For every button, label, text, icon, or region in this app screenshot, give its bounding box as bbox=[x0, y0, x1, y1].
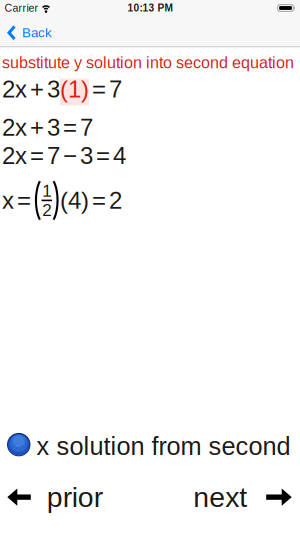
staticText: = bbox=[17, 187, 31, 214]
staticText: next bbox=[193, 481, 247, 513]
staticText: + bbox=[30, 76, 44, 102]
staticText: = bbox=[92, 76, 106, 102]
staticText: 7 bbox=[109, 76, 122, 102]
staticText: 2x bbox=[2, 76, 27, 102]
staticText: prior bbox=[47, 481, 103, 513]
staticText: 7 bbox=[80, 114, 93, 141]
button[interactable]: Back bbox=[0, 22, 52, 40]
staticText: 3 bbox=[47, 114, 60, 141]
staticText: 3 bbox=[80, 142, 93, 169]
staticText: 1 bbox=[42, 181, 51, 200]
staticText: 3 bbox=[47, 76, 60, 102]
staticText: x bbox=[2, 187, 14, 214]
staticText: 4 bbox=[113, 142, 126, 169]
staticText: x solution from second bbox=[36, 432, 290, 460]
staticText: = bbox=[30, 142, 44, 169]
staticText: 10:13 PM bbox=[127, 2, 172, 14]
button[interactable]: Prior step bbox=[7, 481, 103, 513]
staticText: 2x bbox=[2, 142, 27, 169]
staticText: Back bbox=[22, 25, 52, 40]
staticText: Carrier bbox=[4, 2, 38, 14]
staticText: = bbox=[92, 187, 106, 214]
staticText: + bbox=[30, 114, 44, 141]
staticText: = bbox=[96, 142, 110, 169]
staticText: 2 bbox=[42, 200, 51, 219]
staticText: (1) bbox=[60, 76, 89, 102]
staticText: 2x bbox=[2, 114, 27, 141]
staticText: substitute y solution into second equati… bbox=[2, 54, 294, 72]
staticText: 7 bbox=[47, 142, 60, 169]
staticText: = bbox=[63, 114, 77, 141]
staticText: − bbox=[63, 142, 77, 169]
staticText: 2 bbox=[109, 187, 122, 214]
staticText: (4) bbox=[60, 187, 89, 214]
button[interactable]: Next step bbox=[193, 481, 292, 513]
